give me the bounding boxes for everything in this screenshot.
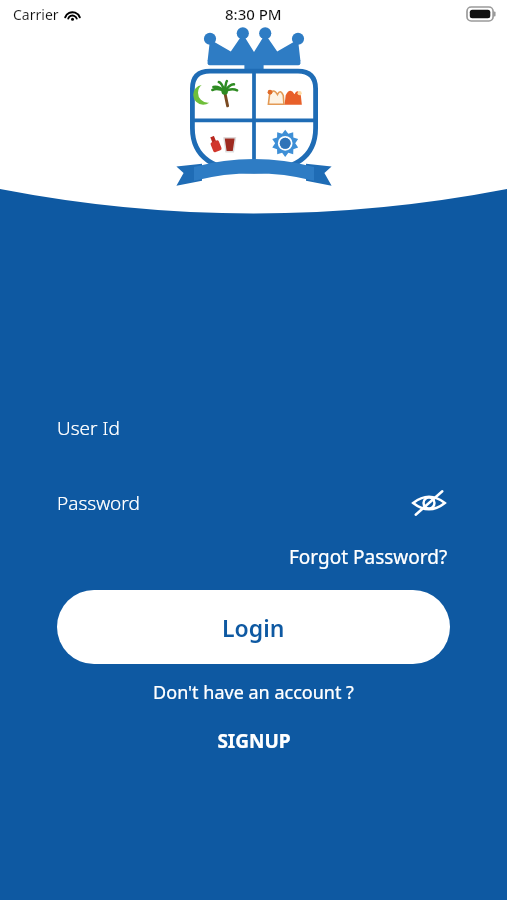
button[interactable]: Show password	[408, 482, 450, 524]
staticText: Password	[57, 490, 140, 516]
button[interactable]: Forgot Password?	[287, 540, 450, 574]
button[interactable]: Password	[57, 480, 450, 526]
staticText: Don't have an account ?	[153, 680, 354, 705]
staticText: Login	[222, 612, 285, 643]
staticText: Carrier	[13, 5, 59, 24]
staticText: Forgot Password?	[289, 544, 448, 570]
staticText: SIGNUP	[217, 728, 291, 754]
button[interactable]: User Id	[57, 405, 450, 451]
button[interactable]: Don't have an account ?	[57, 675, 450, 710]
button[interactable]: Login	[57, 590, 450, 664]
staticText: User Id	[57, 415, 120, 441]
staticText: 8:30 PM	[225, 4, 282, 24]
button[interactable]: SIGNUP	[57, 724, 450, 758]
